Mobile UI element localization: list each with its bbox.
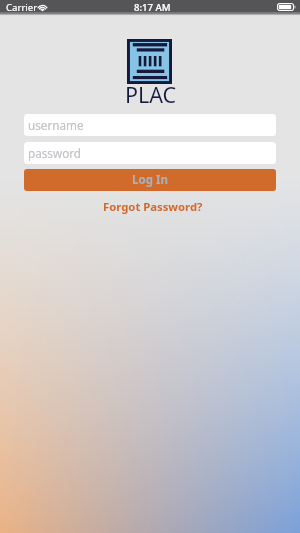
staticText: username (28, 117, 84, 133)
button[interactable]: Log In (24, 169, 276, 191)
other: Battery (277, 3, 296, 11)
staticText: Log In (132, 172, 168, 188)
staticText: password (28, 145, 81, 161)
staticText: PLAC (125, 80, 177, 109)
button[interactable]: Forgot Password? (93, 197, 213, 216)
staticText: Carrier (6, 1, 38, 14)
staticText: 8:17 AM (134, 1, 171, 14)
button[interactable]: username (24, 114, 276, 136)
button[interactable]: password (24, 142, 276, 164)
